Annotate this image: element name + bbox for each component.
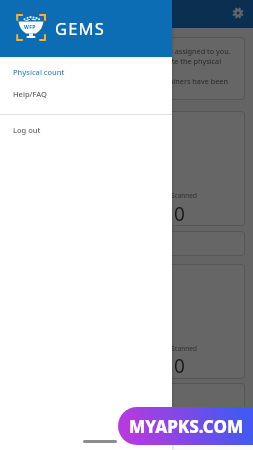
staticText: WFP	[24, 24, 36, 31]
button[interactable]	[231, 6, 245, 20]
button[interactable]: Help/FAQ	[0, 86, 172, 102]
staticText: Log out	[13, 125, 41, 135]
staticText: Physical count	[13, 67, 65, 77]
staticText: 0	[174, 353, 185, 373]
staticText: The count is done when all containers ha…	[61, 76, 228, 86]
staticText: Tap DONE to complete the physical	[101, 56, 222, 66]
staticText: Help/FAQ	[13, 89, 47, 99]
staticText: 0	[174, 201, 185, 221]
staticText: GEMS	[55, 17, 106, 39]
button[interactable]: Log out	[0, 120, 172, 140]
button[interactable]: Physical count	[0, 62, 172, 81]
staticText: Scanned	[171, 191, 198, 200]
staticText: count of the items.	[18, 66, 83, 76]
staticText: MYAPKS.COM	[129, 415, 244, 438]
staticText: scanned.	[18, 86, 49, 96]
staticText: of all containers assigned to you.	[118, 46, 231, 56]
staticText: Scanned	[171, 344, 198, 353]
